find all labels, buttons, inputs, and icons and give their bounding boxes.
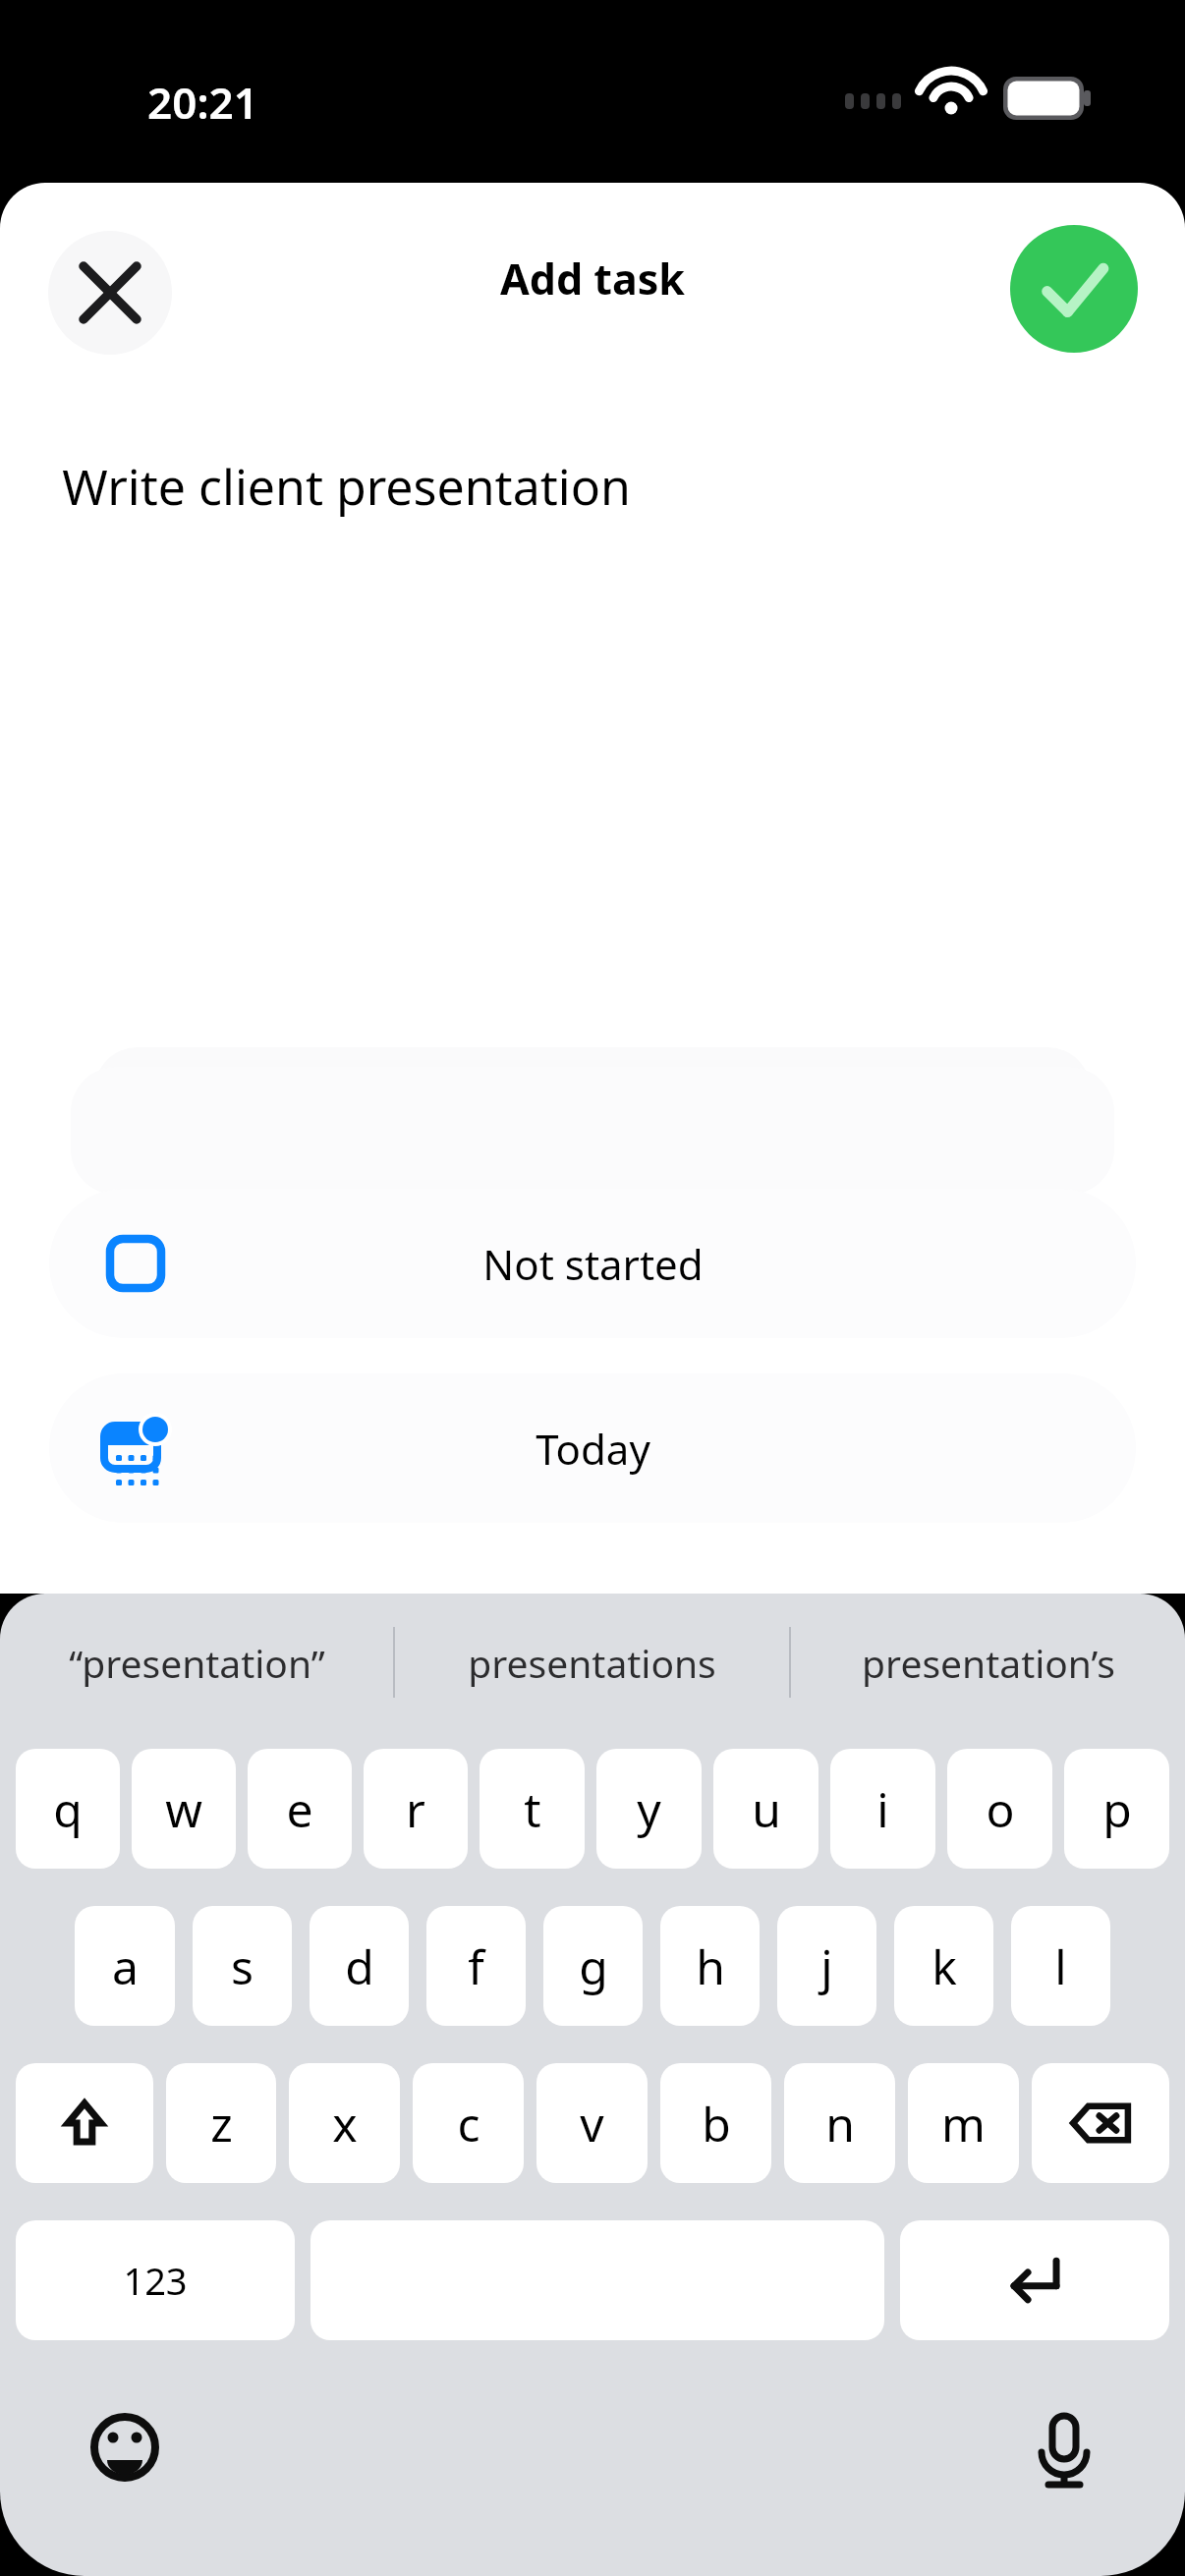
staticText: Today xyxy=(536,1421,650,1477)
button[interactable]: r xyxy=(364,1749,468,1869)
staticText: s xyxy=(231,1934,254,1998)
staticText: d xyxy=(345,1934,374,1998)
staticText: h xyxy=(696,1934,725,1998)
button[interactable]: b xyxy=(660,2063,771,2183)
staticText: z xyxy=(210,2092,233,2156)
staticText: n xyxy=(825,2092,855,2156)
button[interactable]: “presentation” xyxy=(0,1594,393,1731)
button[interactable]: w xyxy=(132,1749,236,1869)
button[interactable]: q xyxy=(16,1749,120,1869)
button[interactable]: y xyxy=(596,1749,702,1869)
button[interactable]: v xyxy=(536,2063,648,2183)
button[interactable]: d xyxy=(310,1906,409,2026)
button[interactable]: g xyxy=(543,1906,643,2026)
button[interactable]: s xyxy=(193,1906,292,2026)
staticText: 20:21 xyxy=(147,73,258,132)
staticText: x xyxy=(332,2092,358,2156)
staticText: w xyxy=(165,1777,202,1841)
staticText: k xyxy=(931,1934,957,1998)
button[interactable]: j xyxy=(777,1906,876,2026)
button[interactable]: 123 xyxy=(16,2220,295,2340)
button[interactable]: f xyxy=(426,1906,526,2026)
staticText: u xyxy=(752,1777,781,1841)
staticText: l xyxy=(1054,1934,1067,1998)
button[interactable]: Close xyxy=(48,231,172,355)
button[interactable]: i xyxy=(830,1749,935,1869)
staticText: c xyxy=(457,2092,480,2156)
staticText: m xyxy=(941,2092,986,2156)
staticText: g xyxy=(579,1934,608,1998)
staticText: r xyxy=(406,1777,425,1841)
button[interactable]: x xyxy=(289,2063,400,2183)
staticText: i xyxy=(876,1777,889,1841)
staticText: presentations xyxy=(468,1637,716,1689)
staticText: a xyxy=(112,1934,139,1998)
staticText: j xyxy=(820,1934,833,1998)
button[interactable]: presentation’s xyxy=(791,1594,1185,1731)
button[interactable]: l xyxy=(1011,1906,1110,2026)
staticText: t xyxy=(524,1777,541,1841)
button[interactable]: Backspace xyxy=(1032,2063,1169,2183)
staticText: 123 xyxy=(123,2255,188,2306)
staticText: p xyxy=(1102,1777,1132,1841)
button[interactable]: Shift xyxy=(16,2063,153,2183)
staticText: f xyxy=(468,1934,484,1998)
button[interactable]: Emoji xyxy=(57,2380,193,2515)
button[interactable]: h xyxy=(660,1906,760,2026)
button[interactable]: c xyxy=(413,2063,524,2183)
staticText: Add task xyxy=(500,250,685,308)
button[interactable]: k xyxy=(894,1906,993,2026)
staticText: “presentation” xyxy=(69,1637,325,1689)
staticText: Write client presentation xyxy=(62,453,631,520)
button[interactable]: e xyxy=(248,1749,352,1869)
button[interactable]: presentations xyxy=(395,1594,789,1731)
staticText: presentation’s xyxy=(862,1637,1115,1689)
button[interactable]: p xyxy=(1064,1749,1169,1869)
staticText: y xyxy=(637,1777,661,1841)
button[interactable]: o xyxy=(947,1749,1052,1869)
staticText: o xyxy=(986,1777,1015,1841)
button[interactable]: Space xyxy=(310,2220,884,2340)
button[interactable]: u xyxy=(713,1749,818,1869)
button[interactable]: Dictation xyxy=(996,2380,1132,2515)
button[interactable]: a xyxy=(75,1906,175,2026)
staticText: v xyxy=(580,2092,604,2156)
staticText: Not started xyxy=(482,1236,704,1292)
button[interactable]: m xyxy=(908,2063,1019,2183)
button[interactable]: t xyxy=(480,1749,585,1869)
staticText: e xyxy=(286,1777,313,1841)
button[interactable]: Today xyxy=(49,1373,1136,1523)
button[interactable]: Return xyxy=(900,2220,1169,2340)
button[interactable]: z xyxy=(166,2063,276,2183)
button[interactable]: n xyxy=(784,2063,895,2183)
button[interactable]: Save task xyxy=(1010,225,1138,353)
staticText: q xyxy=(53,1777,83,1841)
staticText: b xyxy=(702,2092,731,2156)
button[interactable]: Not started xyxy=(49,1189,1136,1338)
